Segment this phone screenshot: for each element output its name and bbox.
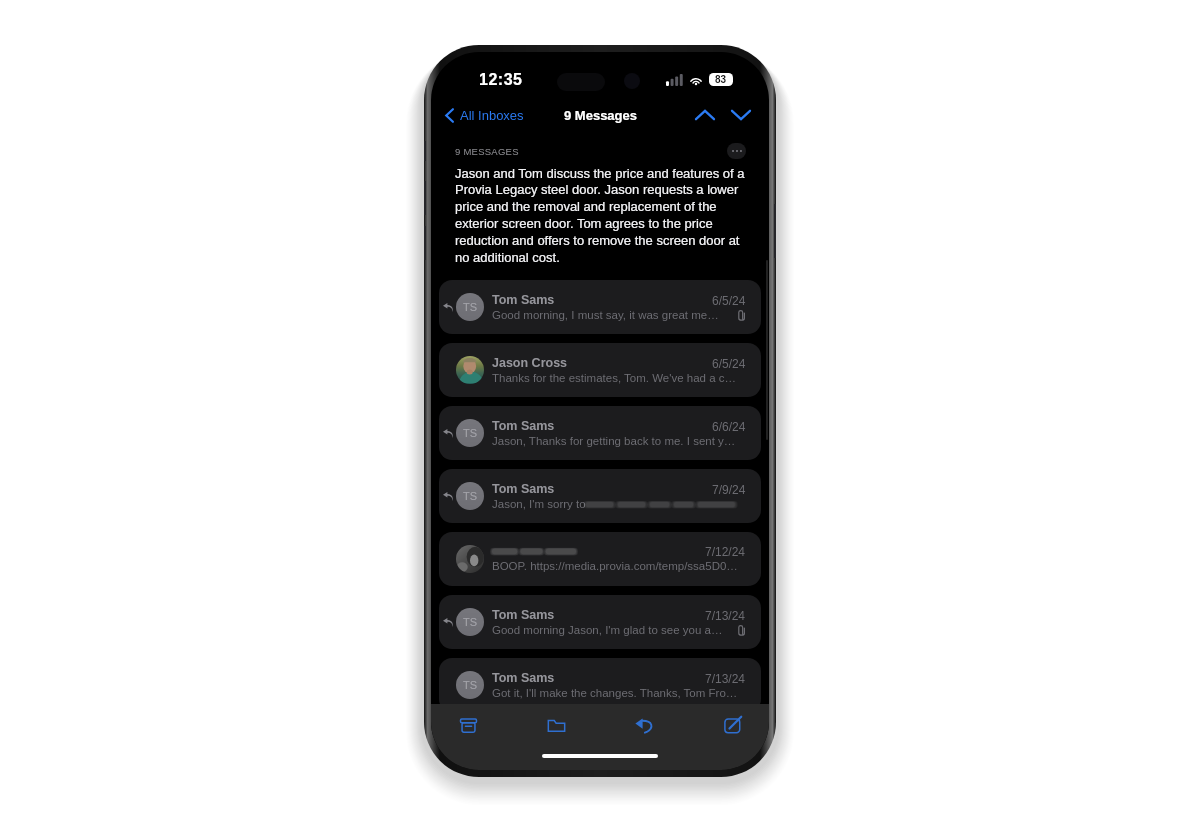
button[interactable]: Previous message bbox=[689, 100, 721, 130]
staticText: Got it, I'll make the changes. Thanks, T… bbox=[492, 687, 738, 700]
staticText: Jason and Tom discuss the price and feat… bbox=[455, 166, 747, 265]
staticText: Tom Sams bbox=[492, 419, 555, 433]
staticText: Jason Cross bbox=[492, 356, 568, 370]
staticText: 83 bbox=[715, 74, 727, 85]
staticText: Jason, Thanks for getting back to me. I … bbox=[492, 435, 736, 448]
staticText: TS bbox=[463, 679, 478, 691]
staticText: Tom Sams bbox=[492, 293, 555, 307]
staticText: 7/13/24 bbox=[705, 609, 746, 622]
staticText: Jason, I'm sorry to bbox=[492, 498, 586, 511]
button[interactable]: Jason Cross bbox=[439, 343, 761, 397]
staticText: Good morning, I must say, it was great m… bbox=[492, 309, 719, 322]
staticText: Tom Sams bbox=[492, 608, 555, 622]
button[interactable]: TS bbox=[439, 658, 761, 712]
staticText: All Inboxes bbox=[460, 108, 524, 123]
staticText: BOOP. https://media.provia.com/temp/ssa5… bbox=[492, 560, 738, 573]
button[interactable]: TS bbox=[439, 280, 761, 334]
button[interactable]: Move to folder bbox=[528, 704, 584, 746]
button[interactable]: TS bbox=[439, 595, 761, 649]
button[interactable]: TS bbox=[439, 469, 761, 523]
staticText: Tom Sams bbox=[492, 671, 555, 685]
staticText: Thanks for the estimates, Tom. We've had… bbox=[492, 372, 737, 385]
staticText: 6/6/24 bbox=[712, 420, 746, 433]
staticText: 6/5/24 bbox=[712, 357, 746, 370]
staticText: 9 MESSAGES bbox=[455, 146, 519, 157]
button[interactable]: Reply bbox=[616, 704, 672, 746]
staticText: Tom Sams bbox=[492, 482, 555, 496]
staticText: TS bbox=[463, 301, 478, 313]
staticText: 6/5/24 bbox=[712, 294, 746, 307]
staticText: Good morning Jason, I'm glad to see you … bbox=[492, 624, 723, 637]
button[interactable]: TS bbox=[439, 406, 761, 460]
staticText: TS bbox=[463, 490, 478, 502]
staticText: TS bbox=[463, 616, 478, 628]
button[interactable]: All Inboxes bbox=[441, 103, 528, 128]
staticText: 9 Messages bbox=[564, 108, 637, 123]
button[interactable]: Compose bbox=[704, 704, 760, 746]
staticText: 7/12/24 bbox=[705, 545, 746, 558]
staticText: 12:35 bbox=[479, 71, 523, 89]
button[interactable]: More options bbox=[727, 143, 746, 159]
button[interactable]: Archive bbox=[440, 704, 496, 746]
button[interactable]: Next message bbox=[725, 100, 757, 130]
button[interactable]: 7/12/24 bbox=[439, 532, 761, 586]
staticText: 7/13/24 bbox=[705, 672, 746, 685]
staticText: TS bbox=[463, 427, 478, 439]
staticText: 7/9/24 bbox=[712, 483, 746, 496]
